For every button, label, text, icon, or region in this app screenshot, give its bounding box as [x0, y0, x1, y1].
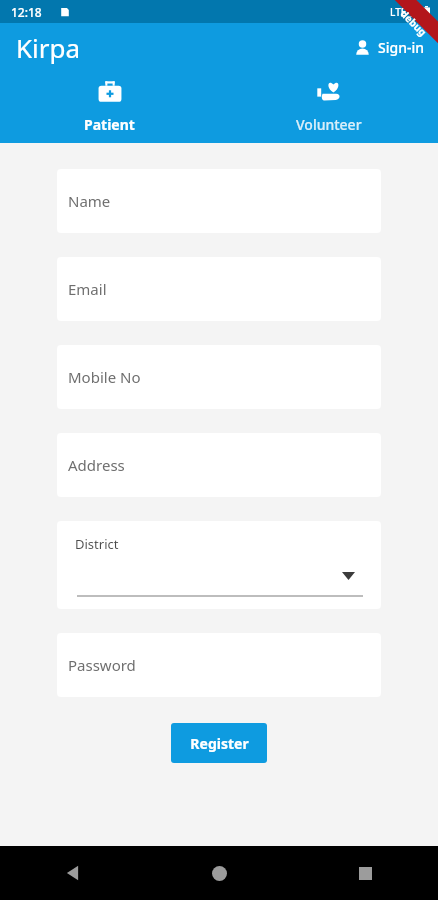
button[interactable]: Patient [0, 71, 219, 143]
button[interactable]: Mobile No [57, 345, 381, 409]
staticText: Password [68, 655, 136, 675]
button[interactable]: District [57, 521, 381, 609]
button[interactable]: Register [171, 723, 267, 763]
staticText: Email [68, 279, 107, 299]
button[interactable]: Address [57, 433, 381, 497]
button[interactable]: Volunteer [219, 71, 438, 143]
button[interactable]: Password [57, 633, 381, 697]
staticText: Kirpa [16, 30, 81, 65]
button[interactable]: Name [57, 169, 381, 233]
staticText: Patient [84, 115, 135, 134]
button[interactable]: Email [57, 257, 381, 321]
staticText: Name [68, 191, 111, 211]
staticText: Mobile No [68, 367, 141, 387]
button[interactable]: Home [146, 846, 292, 900]
staticText: LTE [390, 5, 407, 19]
staticText: Sign-in [378, 38, 424, 57]
button[interactable]: Account [350, 34, 428, 61]
staticText: District [75, 535, 119, 553]
staticText: Register [190, 734, 249, 753]
staticText: debug [398, 7, 430, 39]
other: Account [354, 39, 371, 56]
button[interactable]: Recent apps [292, 846, 438, 900]
other: Open district list [342, 572, 355, 580]
staticText: Address [68, 455, 125, 475]
button[interactable]: Back [0, 846, 146, 900]
staticText: Volunteer [296, 115, 362, 134]
staticText: 12:18 [11, 4, 42, 20]
